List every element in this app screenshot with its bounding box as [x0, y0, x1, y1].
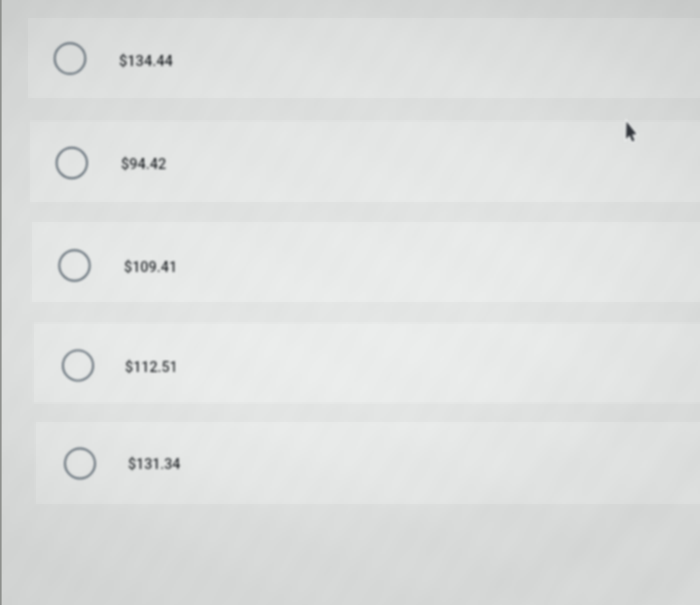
- button[interactable]: [30, 121, 700, 202]
- button[interactable]: [36, 422, 700, 504]
- button[interactable]: [32, 222, 700, 302]
- other: Amount options: [0, 0, 700, 605]
- staticText: $94.42: [121, 156, 167, 173]
- staticText: $109.41: [124, 259, 178, 276]
- button[interactable]: [28, 18, 700, 98]
- staticText: $112.51: [125, 359, 178, 376]
- button[interactable]: [34, 323, 700, 403]
- staticText: $134.44: [119, 52, 173, 69]
- staticText: $131.34: [128, 456, 181, 473]
